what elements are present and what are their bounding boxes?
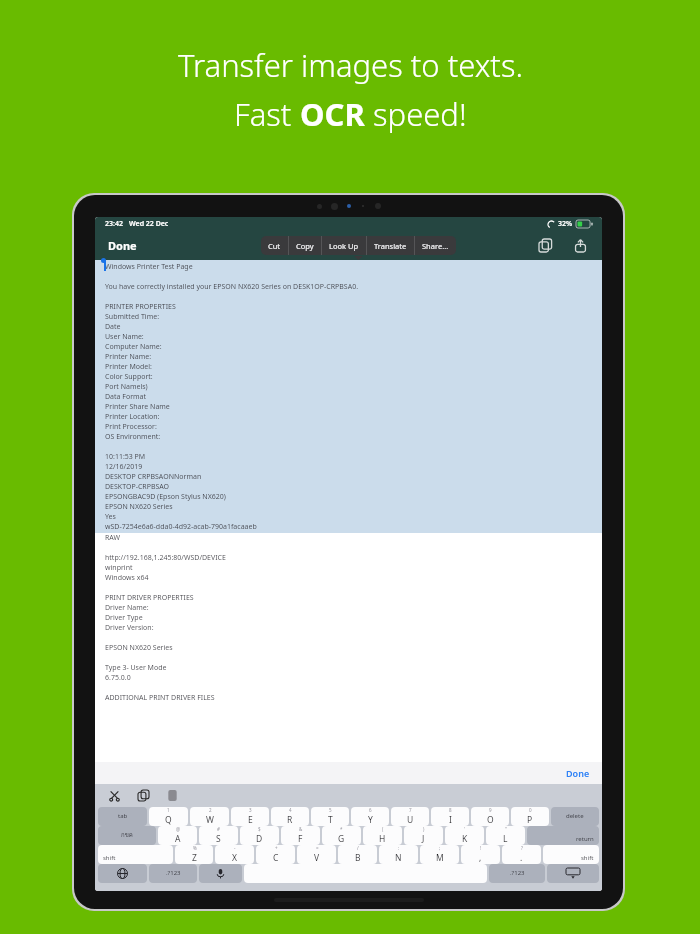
button[interactable]: Share... — [415, 236, 456, 255]
button[interactable]: / — [338, 845, 377, 864]
button[interactable]: = — [297, 845, 336, 864]
staticText: 10:11:53 PM — [105, 452, 146, 462]
button[interactable]: return — [527, 826, 599, 845]
staticText: X — [232, 852, 237, 864]
staticText: * — [340, 826, 343, 832]
button[interactable]: ? — [502, 845, 541, 864]
staticText: wSD-7254e6a6-dda0-4d92-acab-790a1facaaeb — [105, 522, 257, 532]
button[interactable]: shift — [543, 845, 599, 864]
button[interactable]: Hide keyboard — [547, 864, 599, 883]
staticText: .?123 — [510, 869, 525, 877]
staticText: 3 — [249, 807, 252, 813]
button[interactable]: Done — [105, 235, 140, 256]
button[interactable]: 7 — [391, 807, 429, 826]
button[interactable]: 8 — [431, 807, 469, 826]
button[interactable]: @ — [158, 826, 197, 845]
button[interactable]: 6 — [351, 807, 389, 826]
button[interactable]: Cut — [261, 236, 288, 255]
button[interactable]: Dictation — [199, 864, 242, 883]
button[interactable]: ( — [363, 826, 402, 845]
staticText: W — [206, 814, 214, 826]
other: Hide keyboard — [566, 868, 580, 879]
button[interactable]: Copy — [134, 786, 153, 805]
staticText: delete — [566, 812, 584, 820]
button[interactable]: : — [379, 845, 418, 864]
button[interactable]: Change keyboard — [98, 864, 147, 883]
staticText: H — [379, 833, 386, 845]
staticText: Type 3- User Mode — [105, 663, 167, 673]
staticText: ? — [521, 845, 523, 851]
staticText: N — [395, 852, 402, 864]
button[interactable]: 1 — [149, 807, 188, 826]
button[interactable]: Copy — [289, 236, 321, 255]
button[interactable]: Translate — [367, 236, 414, 255]
button[interactable]: # — [199, 826, 238, 845]
button[interactable]: delete — [551, 807, 599, 826]
staticText: Done — [566, 767, 590, 779]
button[interactable]: .?123 — [149, 864, 197, 883]
staticText: S — [216, 833, 221, 845]
button[interactable]: Duplicate — [534, 234, 557, 257]
button[interactable]: + — [256, 845, 295, 864]
button[interactable]: ; — [420, 845, 459, 864]
staticText: L — [503, 833, 508, 845]
staticText: DESKTOP CRPBSAONNorman — [105, 472, 202, 482]
button[interactable]: Paste — [163, 786, 182, 805]
staticText: U — [407, 814, 414, 826]
staticText: Y — [368, 814, 373, 826]
button[interactable]: * — [322, 826, 361, 845]
staticText: Z — [192, 852, 197, 864]
staticText: 1 — [167, 807, 170, 813]
button[interactable]: 5 — [311, 807, 349, 826]
button[interactable]: Done — [554, 763, 602, 783]
staticText: 8 — [449, 807, 452, 813]
staticText: V — [314, 852, 320, 864]
button[interactable]: 2 — [190, 807, 229, 826]
button[interactable]: กขค — [98, 826, 156, 845]
staticText: Q — [165, 814, 172, 826]
button[interactable]: 0 — [511, 807, 549, 826]
staticText: Done — [108, 238, 137, 253]
staticText: PRINTER PROPERTIES — [105, 302, 176, 312]
staticText: You have correctly installed your EPSON … — [105, 282, 359, 292]
staticText: P — [527, 814, 533, 826]
button[interactable]: & — [281, 826, 320, 845]
staticText: 12/16/2019 — [105, 462, 143, 472]
button[interactable]: ) — [404, 826, 443, 845]
staticText: T — [328, 814, 333, 826]
staticText: Submitted Time: — [105, 312, 160, 322]
button[interactable]: ' — [445, 826, 484, 845]
staticText: " — [505, 826, 507, 832]
button[interactable]: tab — [98, 807, 147, 826]
button[interactable]: Cut — [105, 786, 124, 805]
staticText: Fast — [234, 93, 300, 135]
staticText: ! — [480, 845, 482, 851]
staticText: .?123 — [166, 869, 181, 877]
button[interactable]: 4 — [271, 807, 309, 826]
other: Dictation — [215, 868, 226, 879]
button[interactable]: % — [175, 845, 213, 864]
button[interactable]: ! — [461, 845, 500, 864]
staticText: Computer Name: — [105, 342, 162, 352]
staticText: Printer Model: — [105, 362, 152, 372]
staticText: F — [298, 833, 303, 845]
button[interactable]: shift — [98, 845, 173, 864]
staticText: , — [479, 852, 482, 864]
button[interactable]: $ — [240, 826, 279, 845]
staticText: A — [175, 833, 181, 845]
button[interactable]: .?123 — [489, 864, 545, 883]
button[interactable]: - — [215, 845, 254, 864]
staticText: 6.75.0.0 — [105, 673, 131, 683]
staticText: winprint — [105, 563, 133, 573]
button[interactable]: Share — [569, 234, 592, 257]
staticText: C — [273, 852, 279, 864]
staticText: OCR — [300, 93, 365, 135]
button[interactable]: Look Up — [322, 236, 366, 255]
button[interactable]: " — [486, 826, 525, 845]
staticText: - — [234, 845, 236, 851]
staticText: ' — [464, 826, 466, 832]
staticText: Transfer images to texts. — [178, 44, 523, 86]
button[interactable]: 9 — [471, 807, 509, 826]
button[interactable]: 3 — [231, 807, 269, 826]
